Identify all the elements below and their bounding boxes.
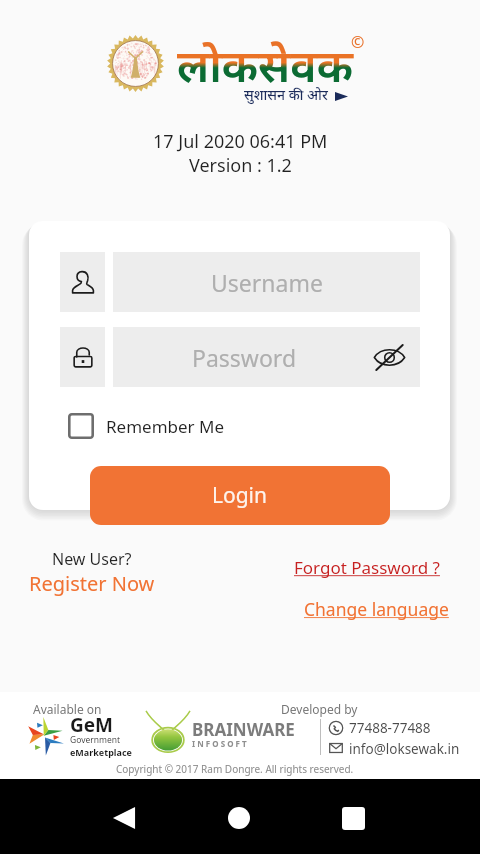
staticText: Remember Me [106, 415, 225, 438]
button[interactable]: Show password [370, 338, 408, 376]
staticText: Login [212, 481, 268, 510]
button[interactable]: Back [100, 794, 148, 842]
staticText: © [351, 31, 365, 53]
staticText: Version : 1.2 [189, 153, 292, 178]
button[interactable]: Recent apps [329, 794, 377, 842]
staticText: I N F O S O F T [192, 738, 247, 749]
staticText: Username [211, 267, 323, 298]
staticText: Register Now [29, 570, 155, 597]
button[interactable]: Change language [304, 597, 449, 621]
staticText: Copyright © 2017 Ram Dongre. All rights … [116, 762, 354, 776]
staticText: Available on [33, 701, 102, 717]
staticText: सुशासन की ओर [244, 85, 328, 104]
staticText: लोकसेवक [177, 34, 353, 95]
staticText: 77488-77488 [349, 719, 431, 737]
staticText: eMarketplace [70, 746, 132, 758]
button[interactable]: Login [90, 466, 390, 525]
staticText: Password [192, 342, 297, 373]
staticText: Developed by [281, 701, 358, 717]
staticText: Change language [304, 597, 449, 621]
staticText: BRAINWARE [192, 718, 295, 741]
button[interactable]: Home [215, 794, 263, 842]
staticText: Government [70, 734, 121, 746]
button[interactable]: Username [113, 252, 420, 312]
button[interactable]: Password [113, 327, 420, 387]
button[interactable]: Remember Me [68, 411, 225, 441]
staticText: 17 Jul 2020 06:41 PM [153, 129, 328, 154]
staticText: New User? [52, 548, 132, 570]
staticText: Forgot Password ? [294, 556, 440, 579]
staticText: GeM [70, 712, 114, 738]
button[interactable]: Forgot Password ? [294, 556, 440, 579]
staticText: info@loksewak.in [349, 740, 460, 755]
button[interactable]: Register Now [29, 570, 155, 597]
